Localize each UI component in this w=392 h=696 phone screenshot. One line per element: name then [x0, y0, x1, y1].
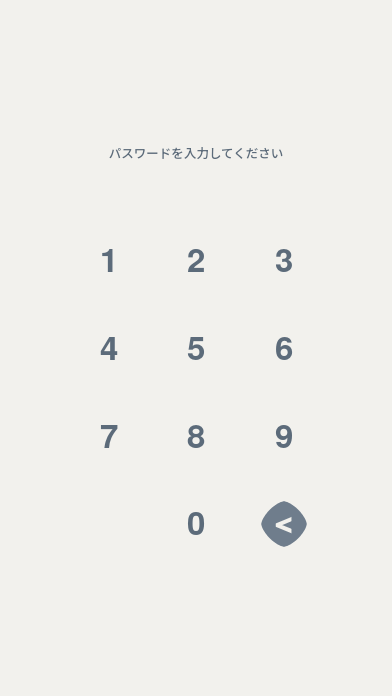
staticText: パスワードを入力してください	[0, 143, 392, 161]
staticText: 2	[187, 235, 206, 282]
button[interactable]: 6	[251, 313, 317, 379]
staticText: 9	[275, 411, 294, 458]
staticText: 0	[187, 498, 206, 545]
staticText: 4	[100, 323, 119, 370]
staticText: 5	[187, 323, 206, 370]
button[interactable]: 9	[251, 401, 317, 467]
staticText: 7	[100, 411, 119, 458]
button[interactable]: Backspace	[251, 491, 317, 557]
staticText: 8	[187, 411, 206, 458]
staticText: 6	[275, 323, 294, 370]
button[interactable]: 7	[76, 401, 142, 467]
button[interactable]: 3	[251, 225, 317, 291]
button[interactable]: 2	[163, 225, 229, 291]
staticText: 1	[100, 235, 119, 282]
staticText: 3	[275, 235, 294, 282]
button[interactable]: 1	[76, 225, 142, 291]
button[interactable]: 8	[163, 401, 229, 467]
button[interactable]: 4	[76, 313, 142, 379]
button[interactable]: 0	[163, 488, 229, 554]
button[interactable]: 5	[163, 313, 229, 379]
